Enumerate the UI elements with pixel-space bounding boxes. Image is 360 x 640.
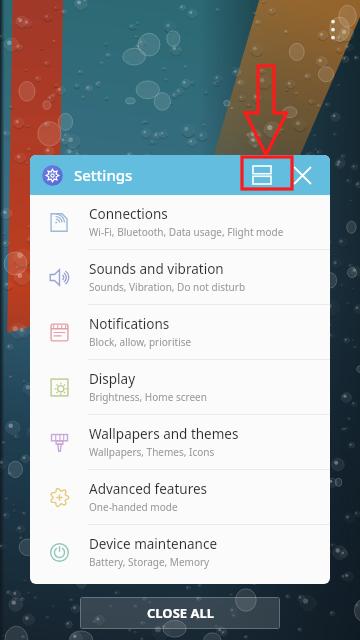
staticText: One-handed mode [89, 500, 178, 514]
button[interactable]: Notifications [30, 305, 330, 359]
staticText: Wallpapers and themes [89, 425, 239, 443]
button[interactable]: Display [30, 360, 330, 414]
button[interactable]: Connections [30, 195, 330, 249]
button[interactable]: Wallpapers and themes [30, 415, 330, 469]
staticText: Battery, Storage, Memory [89, 555, 210, 569]
staticText: Device maintenance [89, 535, 218, 553]
staticText: Sounds, Vibration, Do not disturb [89, 280, 246, 294]
staticText: Settings [74, 165, 133, 185]
staticText: CLOSE ALL [147, 604, 214, 622]
staticText: Notifications [89, 315, 170, 333]
button[interactable]: Device maintenance [30, 525, 330, 579]
button[interactable]: Close [282, 155, 322, 195]
staticText: Advanced features [89, 480, 208, 498]
staticText: Brightness, Home screen [89, 390, 207, 404]
staticText: Connections [89, 205, 168, 223]
button[interactable]: CLOSE ALL [80, 597, 280, 629]
staticText: Wi-Fi, Bluetooth, Data usage, Flight mod… [89, 225, 284, 239]
staticText: Block, allow, prioritise [89, 335, 192, 349]
staticText: Display [89, 370, 136, 388]
staticText: Sounds and vibration [89, 260, 224, 278]
staticText: Wallpapers, Themes, Icons [89, 445, 215, 459]
button[interactable]: More options [322, 12, 344, 44]
button[interactable]: Split screen view [242, 155, 282, 195]
button[interactable]: Advanced features [30, 470, 330, 524]
button[interactable]: Sounds and vibration [30, 250, 330, 304]
